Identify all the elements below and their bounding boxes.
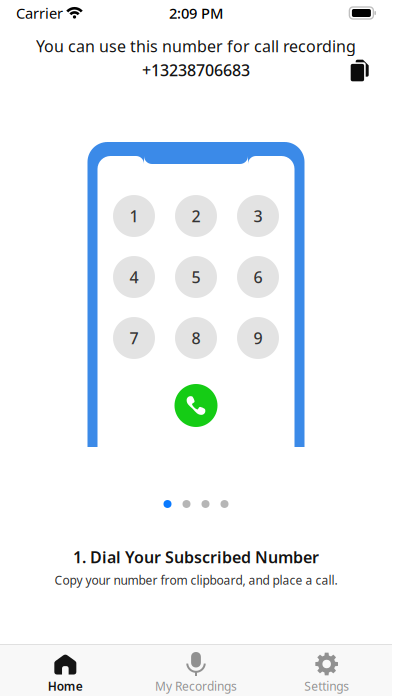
- staticText: My Recordings: [155, 678, 237, 694]
- staticText: 1: [129, 205, 138, 227]
- staticText: 9: [253, 327, 262, 349]
- button[interactable]: Home: [0, 645, 131, 696]
- staticText: Carrier: [16, 3, 63, 23]
- staticText: Settings: [304, 678, 349, 694]
- staticText: 2:09 PM: [169, 3, 223, 23]
- staticText: Home: [48, 678, 83, 694]
- staticText: 3: [253, 205, 262, 227]
- button[interactable]: Copy number: [343, 52, 375, 88]
- staticText: 2: [191, 205, 200, 227]
- staticText: 5: [191, 266, 200, 288]
- staticText: You can use this number for call recordi…: [36, 35, 356, 57]
- staticText: 6: [253, 266, 262, 288]
- staticText: 7: [129, 327, 138, 349]
- staticText: 1. Dial Your Subscribed Number: [73, 546, 319, 568]
- staticText: Copy your number from clipboard, and pla…: [54, 572, 337, 588]
- button[interactable]: My Recordings: [131, 645, 261, 696]
- staticText: +13238706683: [142, 59, 250, 81]
- button[interactable]: Settings: [261, 645, 392, 696]
- staticText: 4: [129, 266, 138, 288]
- staticText: 8: [191, 327, 200, 349]
